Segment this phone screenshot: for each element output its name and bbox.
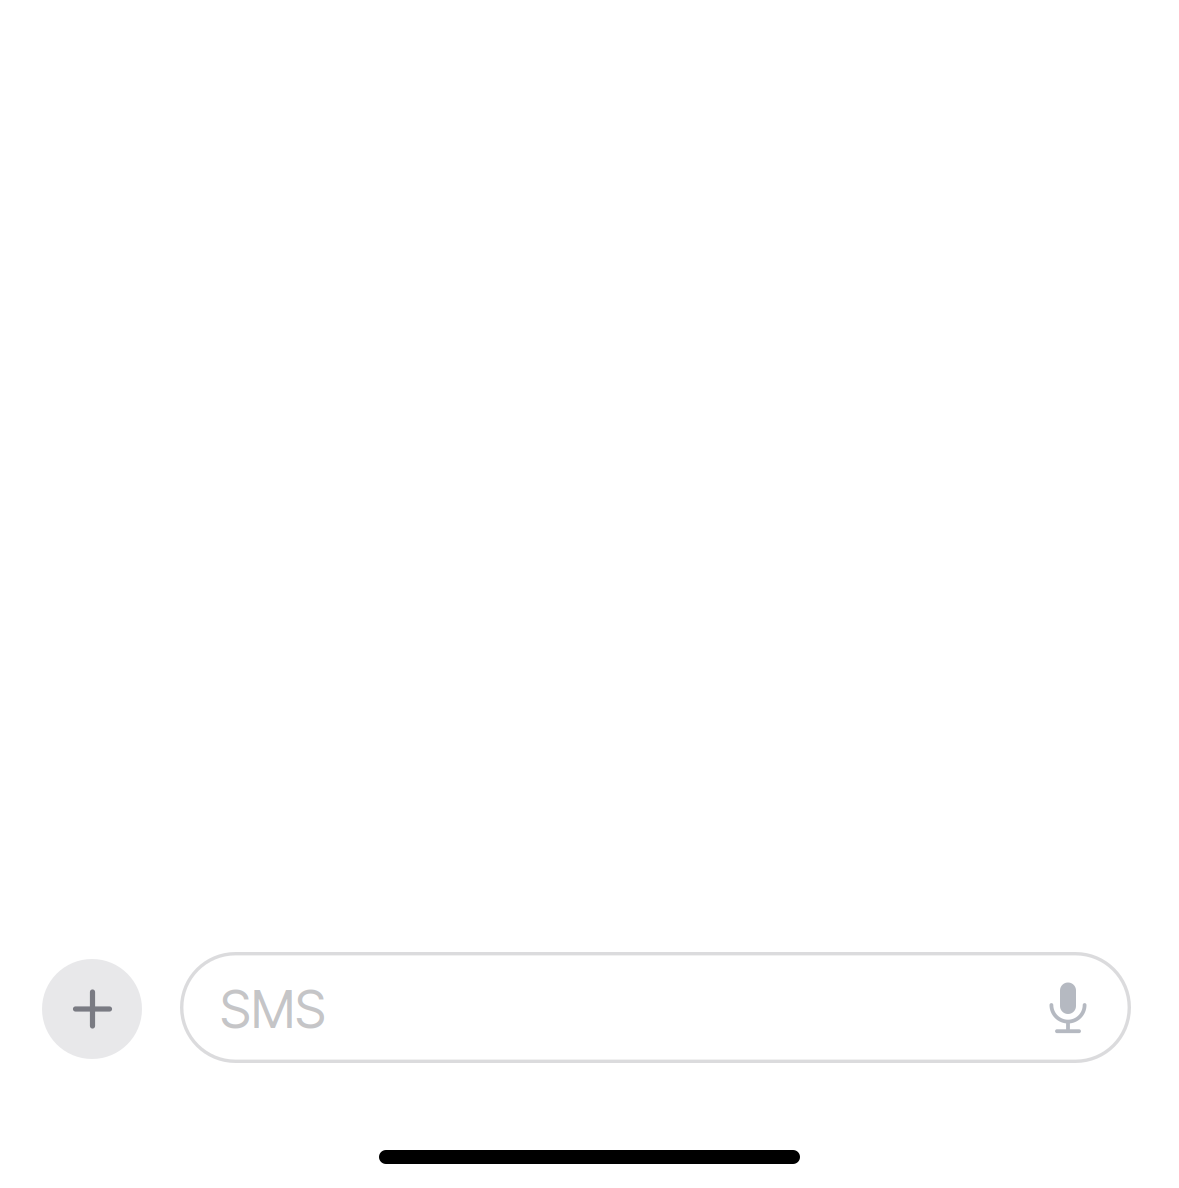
button[interactable]: Text message, SMS [180, 952, 1131, 1063]
button[interactable]: Add attachment [42, 959, 142, 1059]
staticText: SMS [220, 977, 326, 1040]
